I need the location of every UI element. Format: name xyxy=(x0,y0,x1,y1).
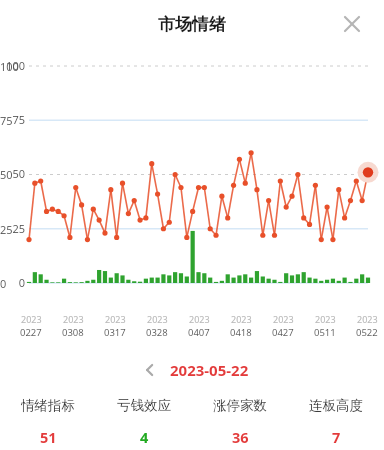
staticText: 36 xyxy=(232,427,249,447)
staticText: 50 xyxy=(0,167,26,182)
staticText: 0511 xyxy=(314,326,336,339)
staticText: 4 xyxy=(140,427,149,447)
staticText: 0407 xyxy=(188,326,210,339)
staticText: 2023 xyxy=(21,313,42,325)
staticText: 25 xyxy=(0,221,25,236)
staticText: 2023 xyxy=(315,313,336,325)
staticText: 0427 xyxy=(272,326,294,339)
staticText: 7 xyxy=(332,427,341,447)
staticText: 0522 xyxy=(356,326,378,339)
staticText: 25 xyxy=(0,222,26,237)
staticText: 51 xyxy=(40,427,57,447)
button[interactable]: 2023-05-22 xyxy=(170,360,249,380)
staticText: 2023 xyxy=(357,313,378,325)
staticText: 2023 xyxy=(231,313,252,325)
button[interactable]: 涨停家数 xyxy=(192,397,288,447)
staticText: 2023 xyxy=(189,313,210,325)
staticText: 0328 xyxy=(146,326,168,339)
staticText: 0 xyxy=(0,275,25,290)
button[interactable]: 连板高度 xyxy=(288,397,384,447)
staticText: 亏钱效应 xyxy=(117,397,171,414)
staticText: 2023 xyxy=(147,313,168,325)
button[interactable]: 情绪指标 xyxy=(0,397,96,447)
staticText: 市场情绪 xyxy=(158,14,226,35)
staticText: 情绪指标 xyxy=(21,397,75,414)
staticText: 0227 xyxy=(20,326,42,339)
staticText: 0 xyxy=(0,276,26,291)
button[interactable]: Previous day xyxy=(136,356,164,384)
staticText: 75 xyxy=(0,112,25,127)
staticText: 0418 xyxy=(230,326,252,339)
staticText: 0317 xyxy=(104,326,126,339)
staticText: 涨停家数 xyxy=(213,397,267,414)
staticText: 0308 xyxy=(62,326,84,339)
staticText: 100 xyxy=(0,59,26,74)
button[interactable]: Close xyxy=(330,2,374,46)
staticText: 连板高度 xyxy=(309,397,363,414)
staticText: 2023 xyxy=(63,313,84,325)
staticText: 75 xyxy=(0,113,26,128)
staticText: 50 xyxy=(0,166,25,181)
staticText: 2023 xyxy=(273,313,294,325)
button[interactable]: 亏钱效应 xyxy=(96,397,192,447)
staticText: 100 xyxy=(0,58,25,73)
staticText: 2023 xyxy=(105,313,126,325)
